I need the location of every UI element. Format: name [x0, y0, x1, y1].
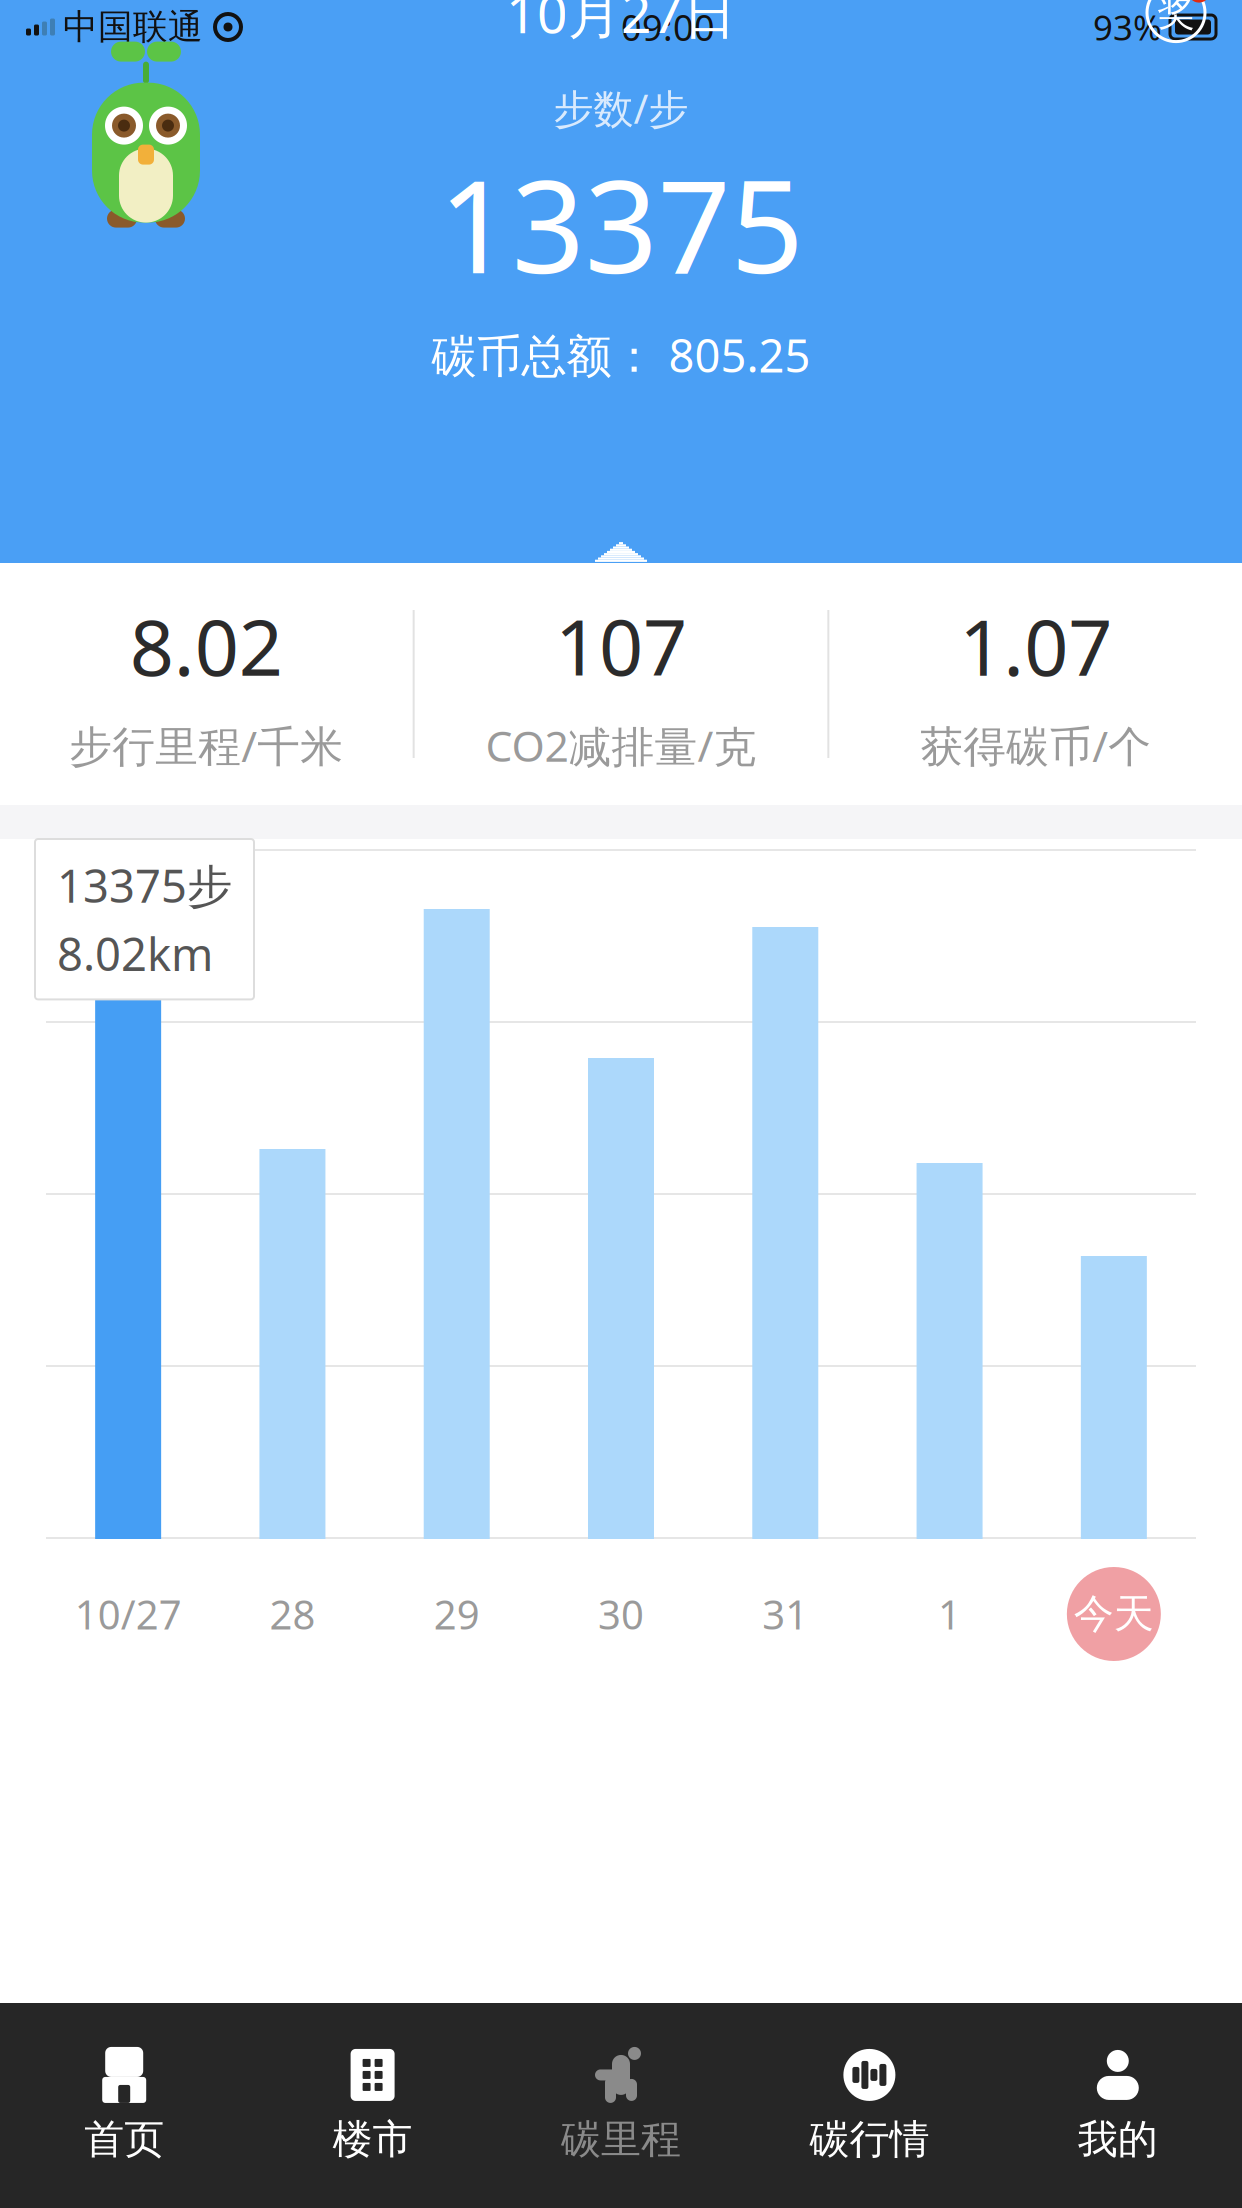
staticText: 碳里程	[561, 2115, 681, 2164]
button[interactable]: 我的	[994, 2029, 1242, 2182]
staticText: 28	[269, 1587, 315, 1640]
staticText: 中国联通	[63, 6, 203, 48]
staticText: 首页	[84, 2115, 164, 2164]
staticText: 107	[555, 594, 687, 697]
staticText: 奖	[1157, 0, 1194, 36]
staticText: 我的	[1078, 2115, 1158, 2164]
staticText: 8.02km	[57, 923, 213, 983]
staticText: 今天	[1074, 1589, 1154, 1638]
staticText: 13375步	[57, 855, 232, 915]
button[interactable]: 今天	[1067, 1567, 1161, 1661]
staticText: 31	[762, 1587, 808, 1640]
button[interactable]: 首页	[0, 2029, 248, 2182]
staticText: 1	[938, 1587, 961, 1640]
staticText: 1.07	[959, 594, 1112, 697]
staticText: 楼市	[333, 2115, 413, 2164]
staticText: 碳币总额： 805.25	[431, 325, 810, 385]
button[interactable]: 碳里程	[497, 2029, 745, 2182]
staticText: 29	[434, 1587, 480, 1640]
staticText: 碳行情	[809, 2115, 929, 2164]
staticText: 步数/步	[553, 82, 688, 135]
staticText: 获得碳币/个	[920, 717, 1151, 774]
staticText: 09:00	[621, 3, 715, 51]
staticText: CO2减排量/克	[485, 717, 756, 774]
staticText: 93%	[1093, 4, 1162, 50]
staticText: 10月27日	[506, 0, 736, 48]
button[interactable]: 奖励	[1140, 0, 1212, 49]
button[interactable]: 楼市	[248, 2029, 497, 2182]
staticText: 13375	[438, 139, 803, 309]
staticText: 步行里程/千米	[69, 717, 343, 774]
button[interactable]: 碳行情	[745, 2029, 994, 2182]
staticText: 10/27	[75, 1587, 182, 1640]
staticText: 30	[598, 1587, 644, 1640]
staticText: 8.02	[130, 594, 283, 697]
